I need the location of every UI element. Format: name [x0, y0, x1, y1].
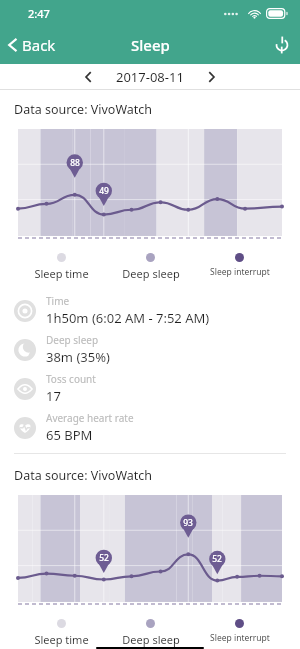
staticText: Data source: VivoWatch: [14, 101, 153, 118]
staticText: 93: [179, 517, 197, 529]
staticText: Sleep time: [34, 266, 89, 281]
staticText: 2:47: [28, 6, 50, 21]
staticText: 88: [66, 157, 84, 169]
staticText: 52: [95, 552, 113, 564]
staticText: Toss count: [46, 372, 96, 386]
button[interactable]: Average heart rate: [0, 408, 300, 447]
button[interactable]: Sleep time: [16, 253, 106, 281]
button[interactable]: Refresh: [264, 27, 300, 63]
button[interactable]: Sleep interrupt: [195, 253, 284, 278]
button[interactable]: Toss count: [0, 369, 300, 408]
staticText: 17: [46, 387, 61, 405]
staticText: 65 BPM: [46, 426, 93, 444]
staticText: Deep sleep: [122, 632, 180, 647]
staticText: 52: [208, 553, 226, 565]
staticText: Average heart rate: [46, 411, 134, 425]
staticText: 1h50m (6:02 AM - 7:52 AM): [46, 309, 210, 327]
button[interactable]: Sleep interrupt: [195, 619, 284, 644]
button[interactable]: Time: [0, 291, 300, 330]
staticText: Data source: VivoWatch: [14, 467, 153, 484]
button[interactable]: Next day: [200, 68, 223, 86]
button[interactable]: Deep sleep: [0, 330, 300, 369]
button[interactable]: Sleep time: [16, 619, 106, 647]
staticText: Sleep time: [34, 632, 89, 647]
button[interactable]: Back: [0, 29, 66, 61]
staticText: Deep sleep: [46, 333, 99, 347]
staticText: Sleep interrupt: [210, 632, 270, 644]
staticText: Sleep: [131, 35, 170, 55]
staticText: 2017-08-11: [116, 68, 184, 86]
button[interactable]: Deep sleep: [106, 619, 195, 647]
button[interactable]: 52: [18, 495, 282, 607]
button[interactable]: Deep sleep: [106, 253, 195, 281]
staticText: 49: [95, 185, 113, 197]
button[interactable]: 88: [18, 129, 282, 241]
staticText: 38m (35%): [46, 348, 110, 366]
staticText: Back: [22, 35, 56, 55]
staticText: Deep sleep: [122, 266, 180, 281]
staticText: Sleep interrupt: [210, 266, 270, 278]
button[interactable]: Previous day: [77, 68, 100, 86]
staticText: Time: [46, 294, 70, 308]
